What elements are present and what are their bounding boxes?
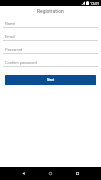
button[interactable]: Home (37, 167, 64, 180)
staticText: Next (47, 78, 55, 82)
button[interactable]: Back (10, 167, 37, 180)
staticText: Registration (37, 8, 64, 14)
button[interactable]: Next (5, 75, 96, 85)
button[interactable]: Recents (64, 167, 91, 180)
staticText: Email (5, 34, 15, 39)
staticText: 12:01 (90, 1, 100, 5)
staticText: Name (5, 21, 16, 26)
staticText: Password (5, 47, 23, 52)
staticText: Confirm password (5, 60, 37, 65)
